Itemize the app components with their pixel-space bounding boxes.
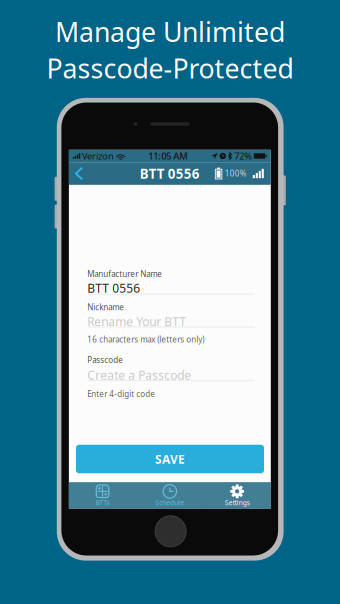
staticText: Passcode-Protected [46, 50, 293, 86]
staticText: Passcode [87, 355, 123, 365]
staticText: SAVE [155, 451, 185, 467]
staticText: Verizon [82, 150, 114, 162]
staticText: Enter 4-digit code [87, 389, 155, 399]
button[interactable]: Settings [203, 482, 271, 509]
staticText: Nickname [87, 302, 124, 312]
staticText: 11:05 AM [148, 150, 188, 162]
staticText: Settings [225, 498, 250, 507]
button[interactable]: Back [69, 163, 89, 184]
staticText: 100% [225, 168, 247, 179]
staticText: BTTs [96, 498, 110, 507]
staticText: Manufacturer Name [87, 269, 162, 279]
staticText: 16 characters max (letters only) [87, 334, 204, 345]
staticText: BTT 0556 [87, 280, 140, 296]
staticText: 72% [234, 150, 252, 162]
staticText: Rename Your BTT [87, 314, 186, 330]
button[interactable]: SAVE [76, 445, 264, 473]
staticText: BTT 0556 [140, 165, 200, 182]
button[interactable]: Schedule [136, 482, 203, 509]
button[interactable]: BTTs [69, 482, 136, 509]
staticText: Create a Passcode [87, 367, 191, 383]
staticText: Manage Unlimited [55, 14, 285, 49]
staticText: Schedule [155, 498, 184, 507]
